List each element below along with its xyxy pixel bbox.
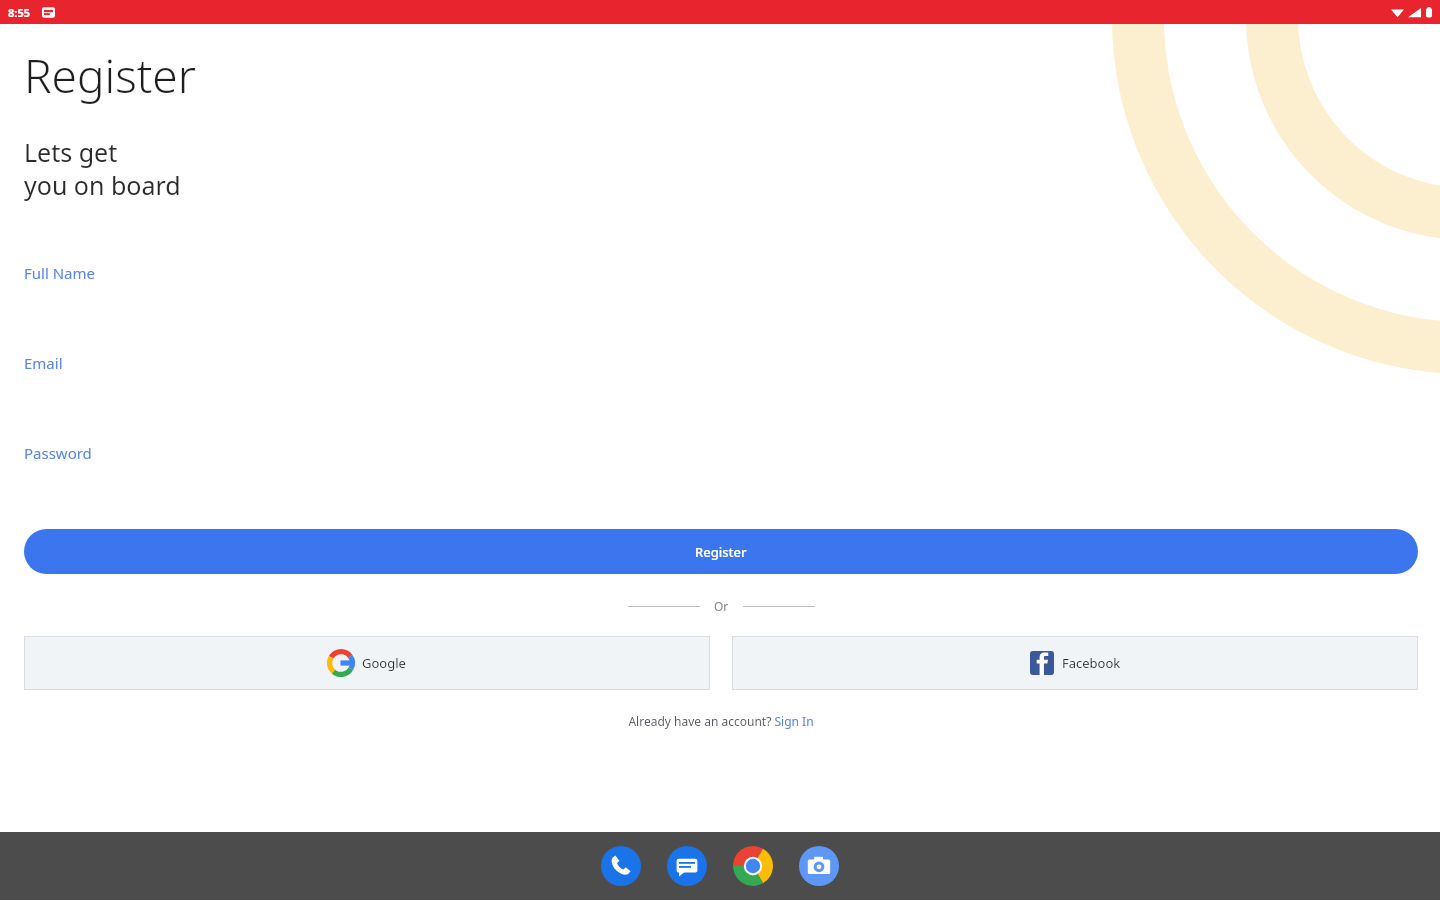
button[interactable]: Facebook bbox=[732, 636, 1418, 690]
button[interactable]: Messages bbox=[665, 844, 709, 888]
button[interactable]: Full Name bbox=[24, 260, 1418, 286]
button[interactable]: Password bbox=[24, 440, 1418, 466]
button[interactable]: Email bbox=[24, 350, 1418, 376]
staticText: Full Name bbox=[24, 263, 95, 283]
staticText: Facebook bbox=[1062, 654, 1121, 672]
button[interactable]: Camera bbox=[797, 844, 841, 888]
staticText: Or bbox=[714, 598, 729, 614]
staticText: 8:55 bbox=[8, 5, 30, 20]
button[interactable]: Register bbox=[24, 529, 1418, 574]
staticText: Password bbox=[24, 443, 92, 463]
staticText: Google bbox=[362, 654, 406, 672]
button[interactable]: Google bbox=[24, 636, 710, 690]
staticText: Lets get you on board bbox=[24, 135, 181, 202]
button[interactable]: Already have an account? Sign In bbox=[24, 713, 1418, 729]
button[interactable]: Phone bbox=[599, 844, 643, 888]
staticText: Register bbox=[695, 543, 747, 561]
staticText: Email bbox=[24, 353, 63, 373]
button[interactable]: Chrome bbox=[731, 844, 775, 888]
staticText: Already have an account? Sign In bbox=[628, 713, 814, 729]
staticText: Register bbox=[24, 44, 196, 107]
